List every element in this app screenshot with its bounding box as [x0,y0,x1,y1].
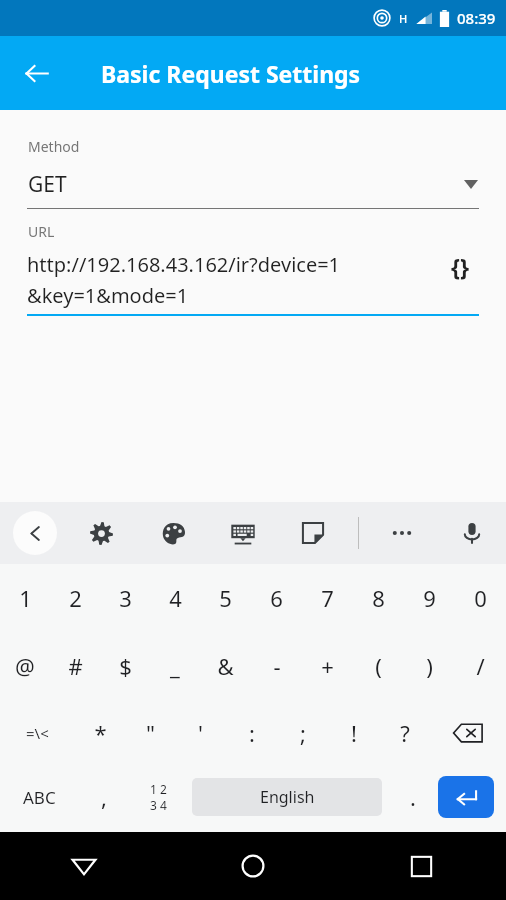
staticText: @ [15,651,35,681]
staticText: URL [28,222,55,241]
button[interactable]: ' [175,700,226,766]
staticText: 8 [372,583,385,613]
button[interactable]: 8 [353,564,404,632]
staticText: * [94,718,107,748]
button[interactable]: Recent apps [337,832,506,900]
staticText: & [217,651,234,681]
button[interactable]: Numbers [130,766,186,828]
button[interactable]: , [78,766,130,828]
button[interactable]: 2 [50,564,100,632]
button[interactable]: ABC [0,766,78,828]
button[interactable]: ? [379,700,430,766]
button[interactable]: @ [0,632,50,700]
staticText: ? [400,718,410,748]
staticText: 7 [321,583,334,613]
staticText: ) [426,651,433,681]
staticText: 9 [423,583,436,613]
button[interactable]: Keyboard layout [222,512,264,554]
staticText: 0 [474,583,487,613]
button[interactable]: " [125,700,175,766]
button[interactable]: Back [0,832,168,900]
button[interactable]: =\< [0,700,75,766]
staticText: Basic Request Settings [101,58,361,89]
staticText: ; [300,718,306,748]
button[interactable]: Back [12,49,60,97]
button[interactable]: 3 [100,564,150,632]
staticText: ABC [23,786,56,809]
button[interactable]: Back [13,511,57,555]
button[interactable]: ) [404,632,455,700]
button[interactable]: : [226,700,277,766]
button[interactable]: Voice input [451,512,493,554]
button[interactable]: Insert variable [434,251,486,295]
button[interactable]: - [251,632,302,700]
button[interactable]: + [302,632,353,700]
button[interactable]: Theme [152,512,194,554]
staticText: 2 [69,583,82,613]
button[interactable]: & [200,632,251,700]
staticText: _ [170,651,180,681]
staticText: ' [198,718,203,748]
button[interactable]: GET [28,168,478,200]
button[interactable]: More options [381,512,423,554]
button[interactable]: Home [168,832,337,900]
staticText: 1 2 [150,781,167,797]
button[interactable]: ( [353,632,404,700]
button[interactable]: $ [100,632,150,700]
staticText: ( [375,651,382,681]
button[interactable]: 5 [200,564,251,632]
button[interactable]: _ [150,632,200,700]
button[interactable]: . [388,766,438,828]
staticText: $ [119,651,132,681]
staticText: # [68,651,83,681]
staticText: {} [451,251,470,282]
button[interactable]: 0 [455,564,506,632]
button[interactable]: / [455,632,506,700]
staticText: 5 [219,583,232,613]
staticText: 3 [119,583,132,613]
button[interactable]: Handwriting [292,512,334,554]
button[interactable]: Enter [438,776,494,818]
staticText: =\< [26,723,49,743]
staticText: + [321,651,334,681]
staticText: ! [351,718,357,748]
staticText: Method [28,137,80,156]
button[interactable]: http://192.168.43.162/ir?device=1 &key=1… [27,251,434,308]
button[interactable]: Settings [80,512,122,554]
staticText: - [273,651,281,681]
staticText: . [410,782,416,812]
staticText: 3 4 [150,797,167,813]
staticText: 08:39 [457,8,496,28]
button[interactable]: 1 [0,564,50,632]
staticText: , [101,782,107,812]
button[interactable]: ! [328,700,379,766]
staticText: H [399,11,408,26]
staticText: : [249,718,255,748]
staticText: 4 [169,583,182,613]
staticText: 1 [19,583,32,613]
button[interactable]: 6 [251,564,302,632]
button[interactable]: Backspace [430,700,506,766]
button[interactable]: ; [277,700,328,766]
button[interactable]: 7 [302,564,353,632]
button[interactable]: # [50,632,100,700]
button[interactable]: * [75,700,125,766]
staticText: GET [28,170,67,199]
button[interactable]: 4 [150,564,200,632]
button[interactable]: 9 [404,564,455,632]
button[interactable]: English [192,778,382,816]
staticText: 6 [270,583,283,613]
staticText: English [260,786,315,808]
staticText: " [146,718,155,748]
staticText: / [476,651,485,681]
